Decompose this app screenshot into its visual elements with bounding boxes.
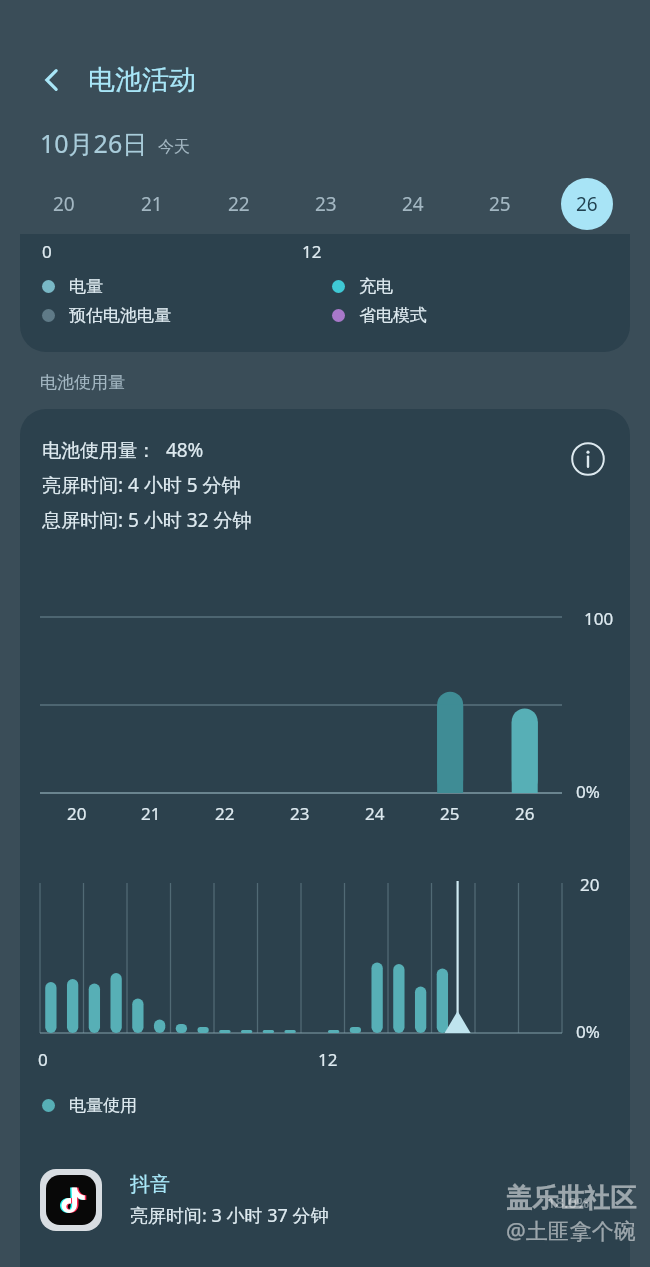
staticText: 26 — [515, 802, 535, 825]
staticText: 23 — [315, 191, 337, 217]
staticText: 10月26日 — [40, 126, 148, 160]
staticText: 充电 — [359, 276, 393, 297]
button[interactable]: 22 — [195, 174, 282, 234]
staticText: 24 — [402, 191, 424, 217]
staticText: 电池使用量： 48% — [42, 437, 204, 463]
staticText: 亮屏时间: 3 小时 37 分钟 — [130, 1203, 329, 1228]
staticText: 23 — [290, 802, 310, 825]
staticText: 0% — [576, 780, 600, 803]
staticText: 电量 — [69, 276, 103, 297]
staticText: 今天 — [158, 137, 190, 157]
button[interactable]: 26 — [543, 174, 630, 234]
staticText: 抖音 — [130, 1172, 170, 1197]
button[interactable]: 25 — [456, 174, 543, 234]
staticText: 21 — [141, 191, 163, 217]
staticText: 12 — [302, 240, 322, 263]
staticText: 12 — [318, 1048, 338, 1071]
staticText: 0 — [38, 1048, 48, 1071]
staticText: 0% — [576, 1020, 600, 1043]
button[interactable]: 抖音 — [20, 1154, 630, 1246]
button[interactable]: 0 — [20, 234, 630, 352]
staticText: 0 — [42, 240, 52, 263]
button[interactable]: 23 — [282, 174, 369, 234]
button[interactable]: 21 — [108, 174, 195, 234]
staticText: 24 — [365, 802, 385, 825]
staticText: 26 — [576, 191, 598, 217]
staticText: 息屏时间: 5 小时 32 分钟 — [42, 507, 252, 533]
staticText: 22 — [215, 802, 235, 825]
staticText: 25 — [440, 802, 460, 825]
button[interactable]: 24 — [369, 174, 456, 234]
staticText: 25 — [489, 191, 511, 217]
staticText: 18.0% — [547, 1192, 590, 1212]
staticText: 盖乐世社区 — [506, 1182, 636, 1215]
staticText: @土匪拿个碗 — [506, 1215, 636, 1245]
staticText: 亮屏时间: 4 小时 5 分钟 — [42, 472, 241, 498]
staticText: 100 — [584, 607, 614, 630]
staticText: 20 — [580, 873, 600, 896]
staticText: 电池使用量 — [40, 372, 125, 393]
staticText: 20 — [67, 802, 87, 825]
button[interactable]: Back — [28, 56, 76, 104]
staticText: 省电模式 — [359, 305, 427, 326]
button[interactable]: 20 — [20, 174, 108, 234]
staticText: 22 — [228, 191, 250, 217]
staticText: 电池活动 — [88, 63, 196, 97]
staticText: 21 — [141, 802, 161, 825]
staticText: 20 — [53, 191, 75, 217]
button[interactable]: Info — [566, 437, 610, 481]
staticText: 电量使用 — [69, 1095, 137, 1116]
staticText: 预估电池电量 — [69, 305, 171, 326]
